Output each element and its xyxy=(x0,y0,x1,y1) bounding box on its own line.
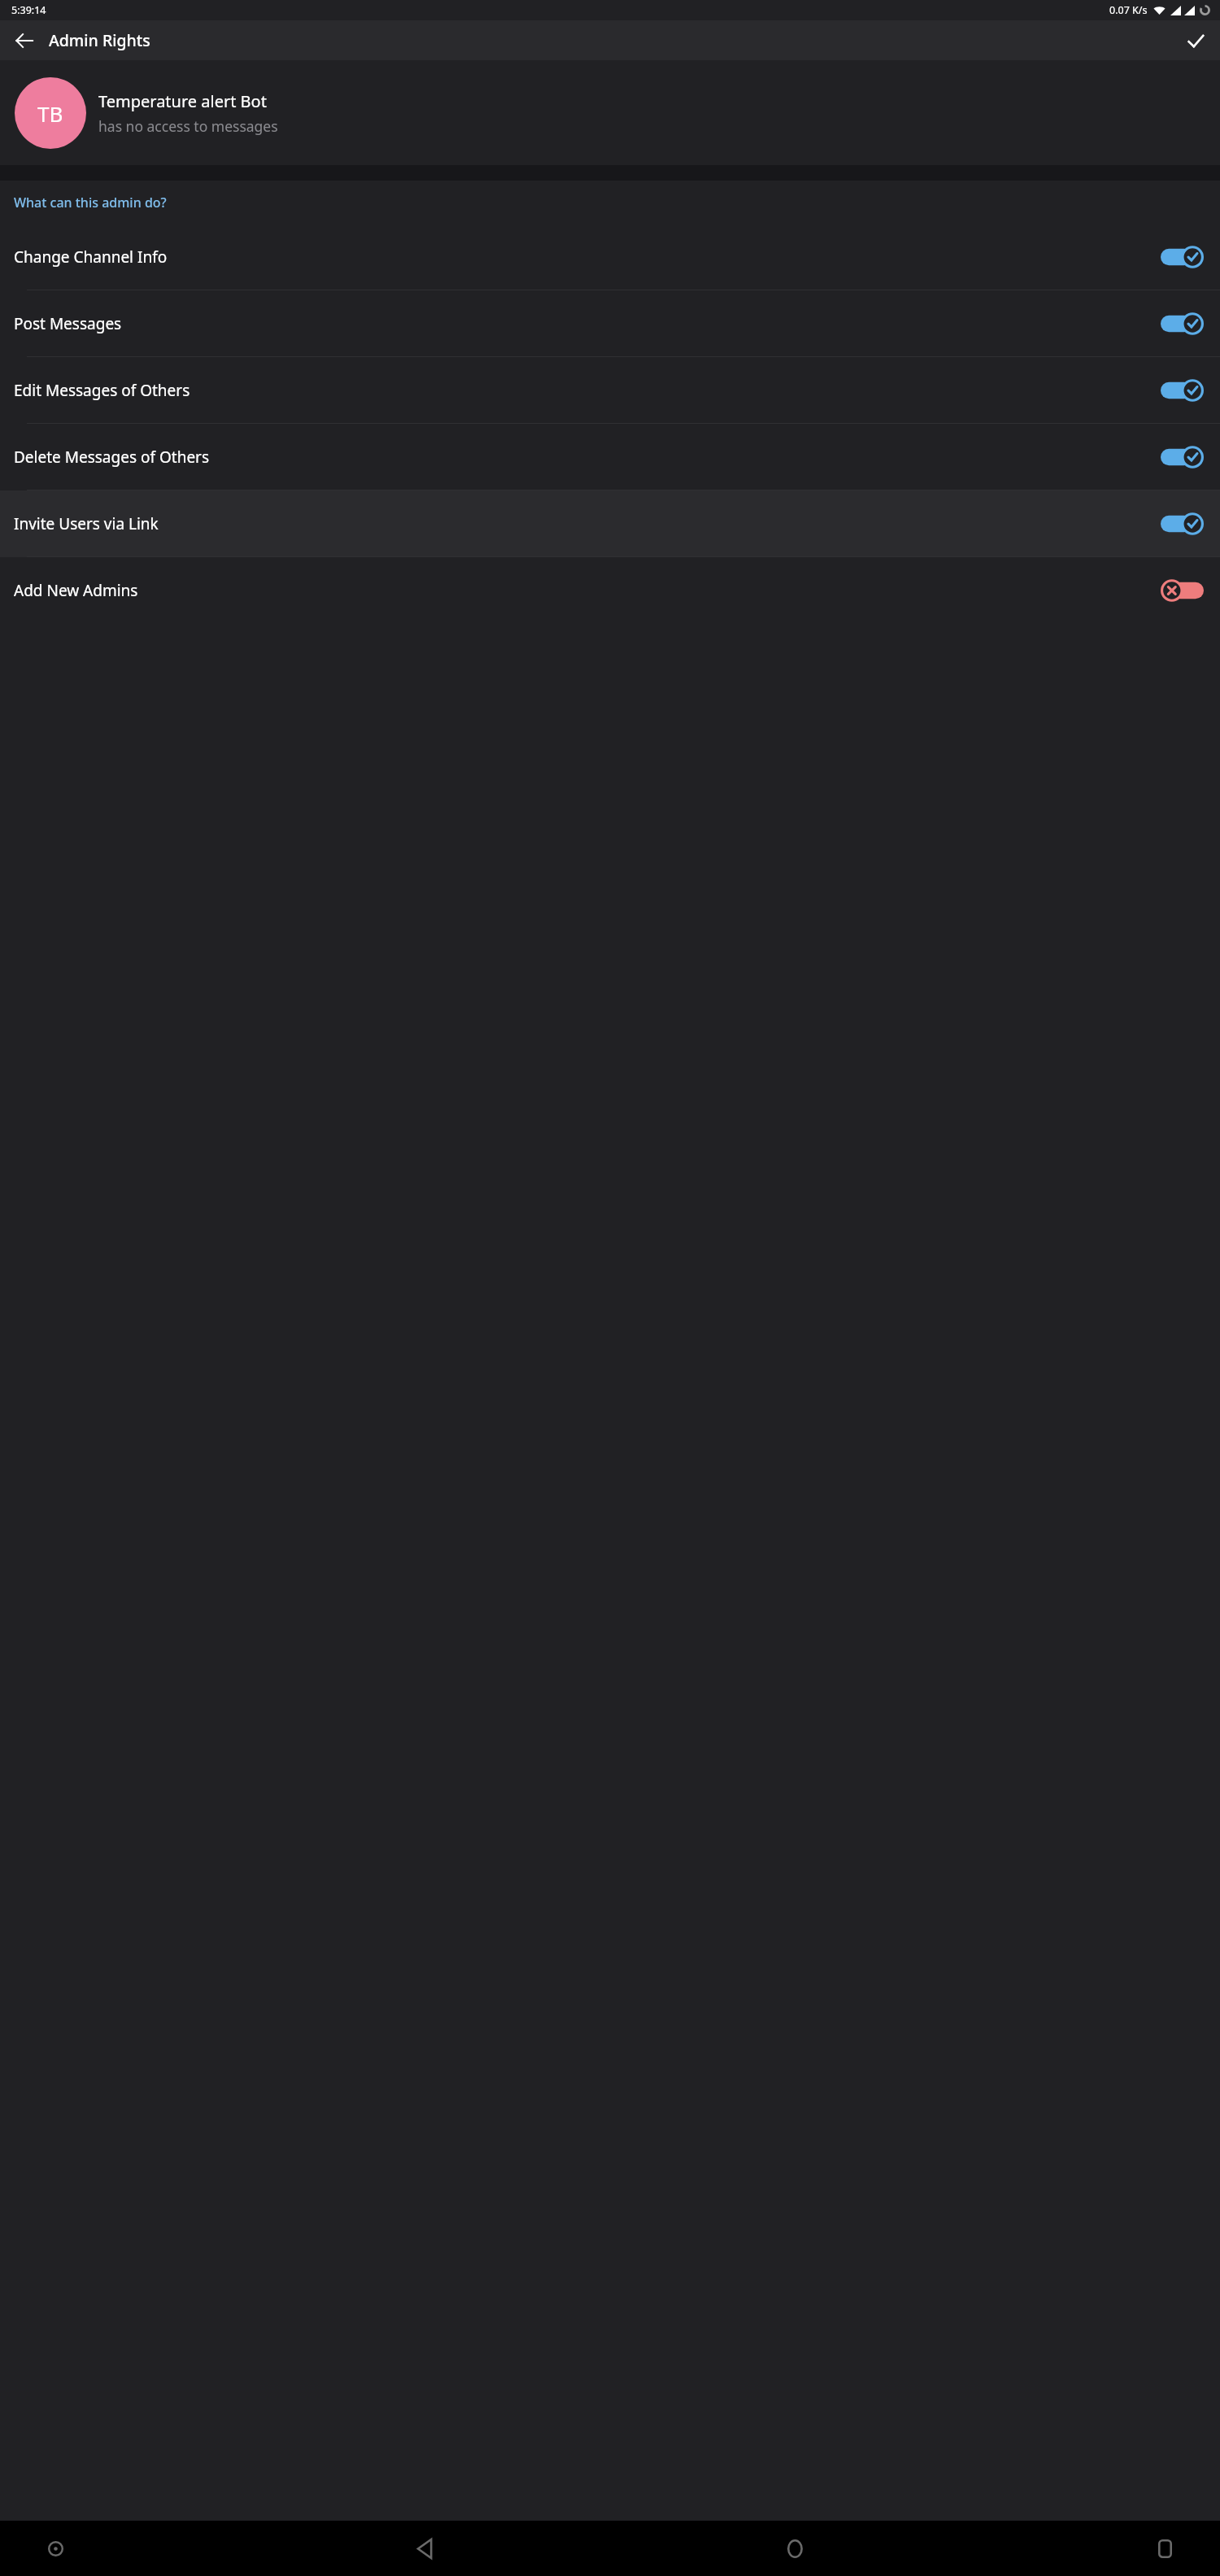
staticText: Change Channel Info xyxy=(14,246,168,268)
button[interactable]: Back xyxy=(402,2526,447,2571)
button[interactable]: Assistant xyxy=(33,2526,78,2571)
staticText: Add New Admins xyxy=(14,580,138,601)
staticText: Admin Rights xyxy=(49,29,150,51)
button[interactable]: Enabled xyxy=(1161,512,1204,536)
button[interactable]: Post Messages xyxy=(0,290,1220,357)
button[interactable]: Enabled xyxy=(1161,445,1204,469)
button[interactable]: Enabled xyxy=(1161,312,1204,336)
button[interactable]: TB xyxy=(0,60,1220,165)
staticText: What can this admin do? xyxy=(14,194,167,211)
button[interactable]: Add New Admins xyxy=(0,557,1220,624)
staticText: Delete Messages of Others xyxy=(14,447,210,468)
button[interactable]: Disabled xyxy=(1161,578,1204,603)
button[interactable]: Recents xyxy=(1142,2526,1187,2571)
staticText: Invite Users via Link xyxy=(14,513,159,534)
button[interactable]: Delete Messages of Others xyxy=(0,424,1220,490)
button[interactable]: Edit Messages of Others xyxy=(0,357,1220,424)
staticText: TB xyxy=(37,99,63,128)
button[interactable]: Enabled xyxy=(1161,245,1204,269)
button[interactable]: Back xyxy=(5,21,44,60)
staticText: 0.07 K/s xyxy=(1109,3,1148,17)
button[interactable]: Change Channel Info xyxy=(0,224,1220,290)
button[interactable]: Enabled xyxy=(1161,378,1204,403)
staticText: 5:39:14 xyxy=(11,3,46,17)
button[interactable]: Home xyxy=(772,2526,817,2571)
button[interactable]: Invite Users via Link xyxy=(0,490,1220,557)
staticText: Temperature alert Bot xyxy=(98,90,267,112)
staticText: has no access to messages xyxy=(98,116,278,136)
button[interactable]: Done xyxy=(1176,21,1215,60)
staticText: Post Messages xyxy=(14,313,122,334)
staticText: Edit Messages of Others xyxy=(14,380,190,401)
